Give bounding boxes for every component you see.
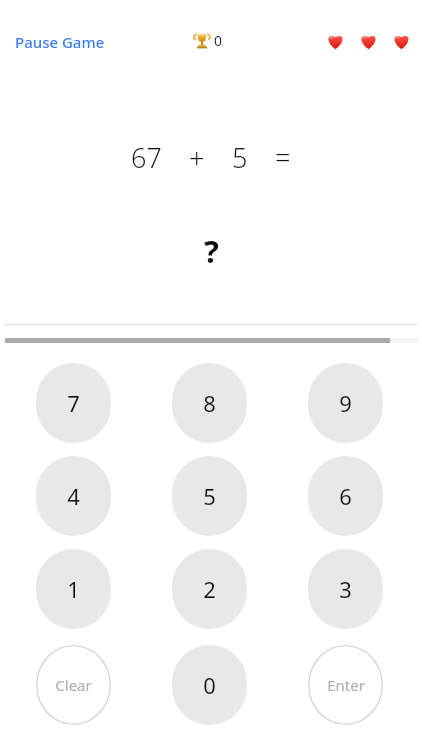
staticText: Enter xyxy=(327,675,365,695)
staticText: 8 xyxy=(203,388,216,418)
staticText: 7 xyxy=(67,388,80,418)
staticText: 4 xyxy=(67,481,80,511)
staticText: 0 xyxy=(203,670,216,700)
button[interactable]: 8 xyxy=(172,363,247,443)
button[interactable]: 9 xyxy=(308,363,383,443)
staticText: 0 xyxy=(214,31,223,50)
button[interactable]: Enter xyxy=(308,645,383,725)
button[interactable]: 0 xyxy=(172,645,247,725)
staticText: 67 xyxy=(131,139,162,176)
button[interactable]: 3 xyxy=(308,549,383,629)
staticText: 6 xyxy=(339,481,352,511)
staticText: 1 xyxy=(67,574,80,604)
other: Lives remaining xyxy=(325,31,412,51)
button[interactable]: 7 xyxy=(36,363,111,443)
other: Trophy score xyxy=(193,32,211,50)
button[interactable]: 2 xyxy=(172,549,247,629)
button[interactable]: Pause Game xyxy=(13,30,107,54)
button[interactable]: 1 xyxy=(36,549,111,629)
staticText: 5 xyxy=(232,139,248,176)
button[interactable]: 4 xyxy=(36,456,111,536)
button[interactable]: 5 xyxy=(172,456,247,536)
staticText: Pause Game xyxy=(15,32,105,52)
staticText: 9 xyxy=(339,388,352,418)
staticText: = xyxy=(275,139,291,176)
button[interactable]: Clear xyxy=(36,645,111,725)
staticText: 3 xyxy=(339,574,352,604)
staticText: 2 xyxy=(203,574,216,604)
staticText: + xyxy=(189,139,205,176)
button[interactable]: 6 xyxy=(308,456,383,536)
staticText: 5 xyxy=(203,481,216,511)
staticText: ? xyxy=(204,230,219,272)
staticText: Clear xyxy=(55,675,92,695)
